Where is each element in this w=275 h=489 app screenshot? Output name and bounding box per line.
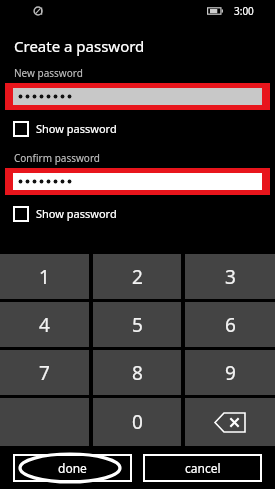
- staticText: 8: [132, 360, 143, 386]
- staticText: 2: [132, 264, 143, 290]
- button[interactable]: 5: [93, 302, 181, 347]
- button[interactable]: 9: [185, 350, 275, 395]
- button[interactable]: Show password: [14, 121, 117, 136]
- staticText: Confirm password: [14, 151, 100, 165]
- staticText: 3: [225, 264, 236, 290]
- button[interactable]: 6: [185, 302, 275, 347]
- button[interactable]: cancel: [143, 454, 262, 482]
- staticText: Show password: [36, 121, 117, 136]
- button[interactable]: Show password: [14, 206, 117, 221]
- staticText: 5: [132, 312, 143, 338]
- button[interactable]: 7: [0, 350, 89, 395]
- staticText: 9: [225, 360, 236, 386]
- button[interactable]: 1: [0, 254, 89, 299]
- staticText: Show password: [36, 206, 117, 221]
- button[interactable]: 8: [93, 350, 181, 395]
- staticText: done: [58, 460, 87, 476]
- button[interactable]: [5, 168, 270, 195]
- staticText: 0: [132, 409, 143, 435]
- staticText: 7: [39, 360, 50, 386]
- button[interactable]: Backspace: [185, 398, 275, 446]
- button[interactable]: done: [13, 454, 132, 482]
- button[interactable]: [5, 83, 270, 110]
- staticText: Create a password: [14, 36, 145, 56]
- button[interactable]: 3: [185, 254, 275, 299]
- staticText: 1: [39, 264, 50, 290]
- staticText: 3:00: [234, 4, 254, 18]
- button[interactable]: 2: [93, 254, 181, 299]
- staticText: cancel: [185, 460, 221, 476]
- staticText: New password: [14, 66, 83, 80]
- staticText: 6: [225, 312, 236, 338]
- button[interactable]: 0: [93, 398, 181, 446]
- button[interactable]: 4: [0, 302, 89, 347]
- staticText: 4: [39, 312, 50, 338]
